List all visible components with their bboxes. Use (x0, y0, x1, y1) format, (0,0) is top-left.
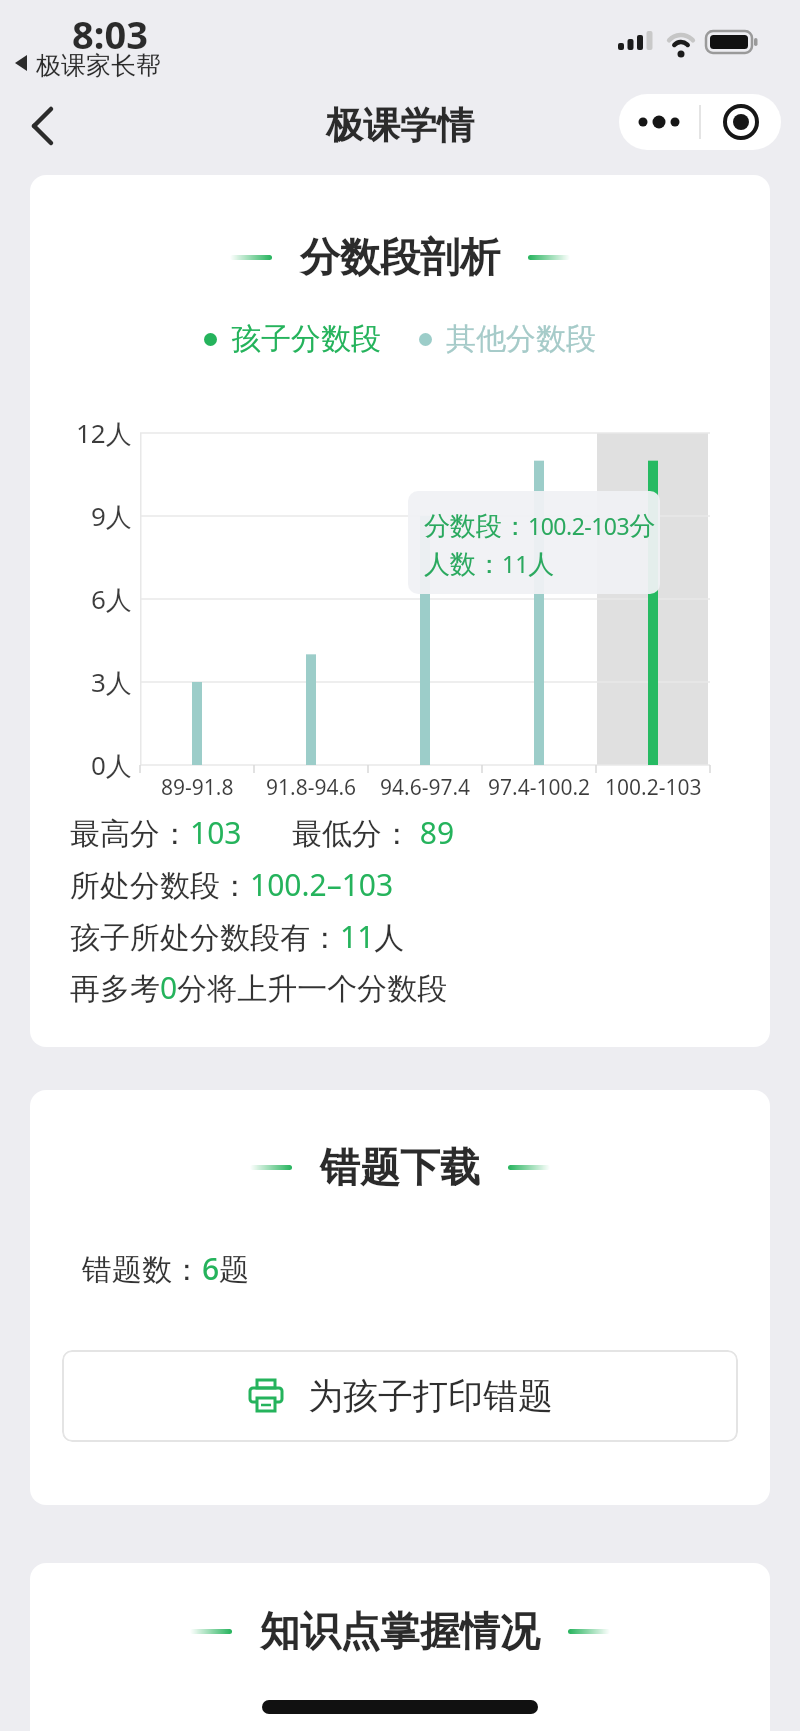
staticText: 89-91.8 (161, 773, 234, 802)
staticText: 其他分数段 (446, 320, 596, 358)
staticText: 知识点掌握情况 (260, 1606, 540, 1656)
staticText: 错题数：6题 (82, 1248, 250, 1289)
staticText: 错题下载 (320, 1142, 480, 1192)
staticText: 分数段：100.2-103分 (424, 510, 656, 543)
button[interactable] (16, 100, 68, 152)
staticText: 孩子所处分数段有：11人 (70, 916, 405, 957)
staticText: 94.6-97.4 (380, 773, 471, 802)
staticText: 极课家长帮 (36, 50, 161, 81)
staticText: 所处分数段：100.2–103 (70, 864, 394, 905)
button[interactable] (619, 94, 699, 150)
staticText: 0人 (91, 747, 132, 783)
staticText: 为孩子打印错题 (308, 1374, 553, 1418)
staticText: 100.2-103 (605, 773, 702, 802)
staticText: 最低分： 89 (292, 812, 455, 853)
button[interactable]: 为孩子打印错题 (62, 1350, 738, 1442)
staticText: 分数段剖析 (300, 232, 500, 282)
staticText: 12人 (76, 415, 132, 451)
staticText: 孩子分数段 (231, 320, 381, 358)
staticText: 97.4-100.2 (488, 773, 591, 802)
staticText: 91.8-94.6 (266, 773, 357, 802)
staticText: 再多考0分将上升一个分数段 (70, 967, 448, 1008)
staticText: 8:03 (72, 8, 148, 60)
staticText: 9人 (91, 498, 132, 534)
staticText: 极课学情 (326, 102, 474, 149)
staticText: 6人 (91, 581, 132, 617)
staticText: 最高分：103 (70, 812, 242, 853)
staticText: 人数：11人 (424, 548, 555, 581)
button[interactable] (701, 94, 781, 150)
staticText: 3人 (91, 664, 132, 700)
